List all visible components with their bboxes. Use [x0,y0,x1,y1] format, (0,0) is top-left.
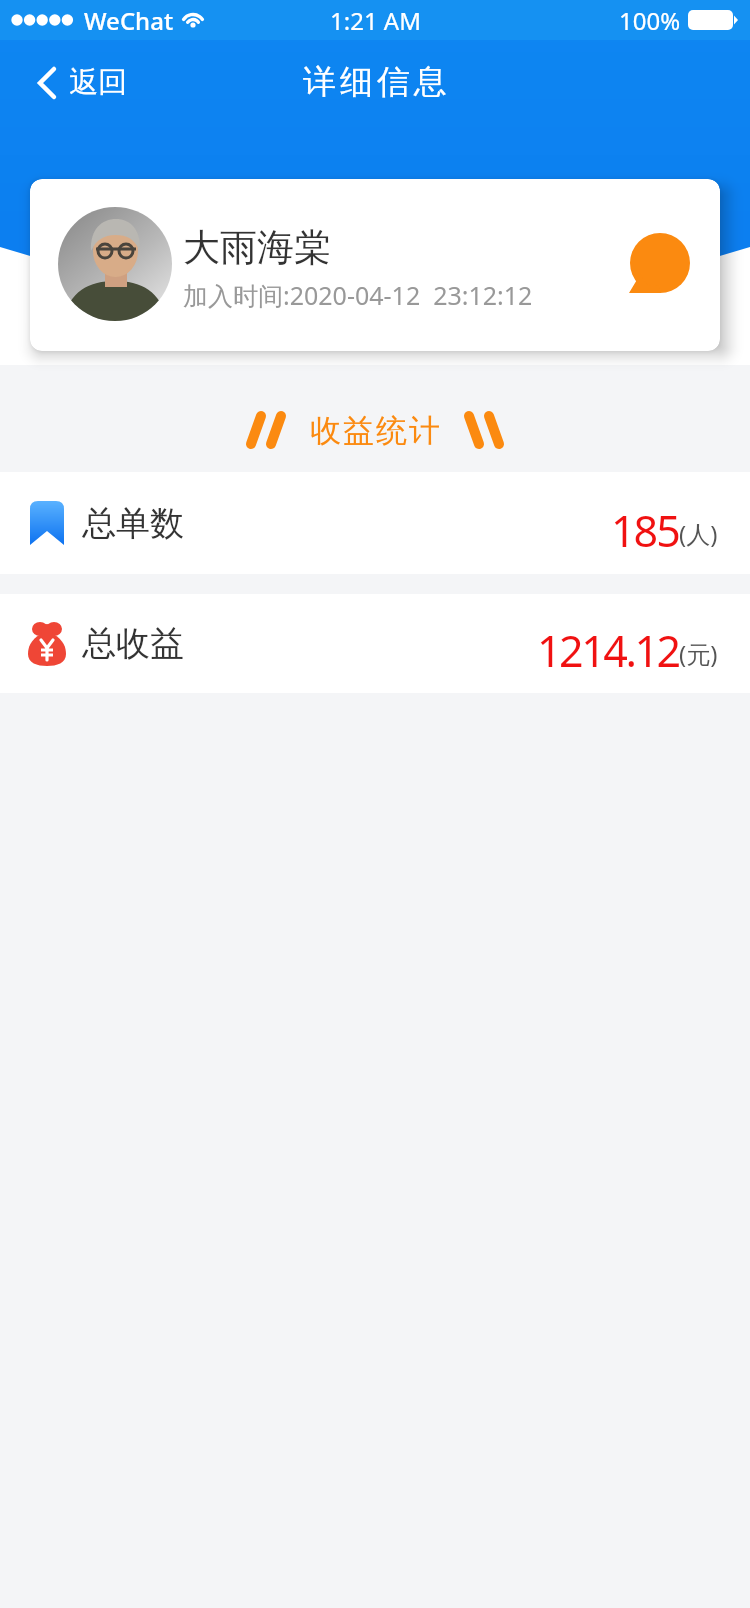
staticText: (元) [679,637,718,670]
staticText: 185 [611,501,679,560]
button[interactable]: 总单数 [0,472,750,574]
staticText: 收益统计 [309,411,441,450]
button[interactable]: 大雨海棠 [30,179,720,351]
staticText: 详细信息 [301,61,449,103]
staticText: 1214.12 [537,621,679,680]
staticText: 总单数 [82,502,184,545]
staticText: 返回 [69,64,127,101]
button[interactable]: 返回 [37,64,127,101]
button[interactable]: 总收益 [0,594,750,693]
staticText: (人) [679,517,718,550]
staticText: 100% [619,4,681,37]
staticText: 大雨海棠 [183,224,331,271]
staticText: 1:21 AM [330,4,421,37]
staticText: WeChat [84,4,174,37]
staticText: 加入时间:2020-04-12 23:12:12 [183,278,533,312]
staticText: 总收益 [82,622,184,665]
button[interactable] [629,233,691,295]
